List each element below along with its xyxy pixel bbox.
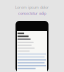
- staticText: consectetur adip: [18, 11, 46, 16]
- staticText: Lorem ipsum dolor: [15, 4, 49, 10]
